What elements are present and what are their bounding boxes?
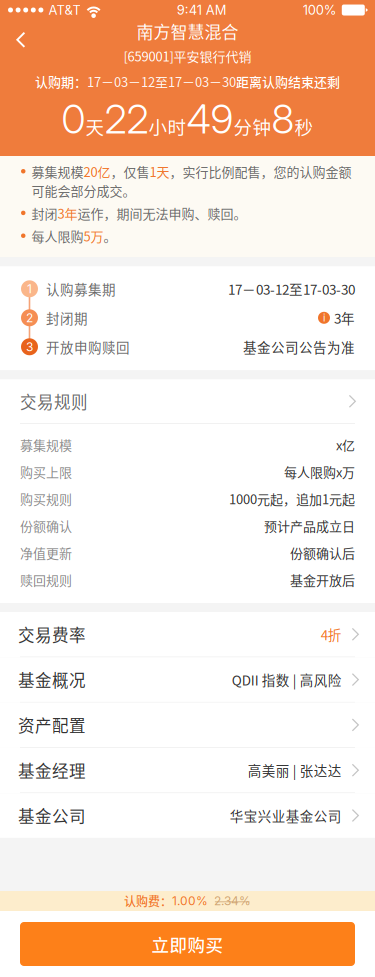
staticText: 开放申购赎回 bbox=[46, 337, 130, 356]
staticText: 净值更新 bbox=[20, 543, 72, 562]
staticText: 购买规则 bbox=[20, 489, 72, 508]
staticText: 基金概况 bbox=[18, 668, 86, 692]
staticText: 天 bbox=[85, 113, 104, 140]
staticText: 份额确认后 bbox=[290, 543, 355, 562]
staticText: 小时 bbox=[148, 113, 186, 140]
staticText: 秒 bbox=[294, 113, 313, 140]
staticText: 49 bbox=[186, 95, 233, 143]
staticText: 2.34% bbox=[214, 894, 251, 908]
staticText: 份额确认 bbox=[20, 516, 72, 535]
staticText: 每人限购5万。 bbox=[31, 226, 116, 245]
staticText: 22 bbox=[104, 95, 148, 143]
staticText: 南方智慧混合 bbox=[136, 19, 238, 43]
staticText: 高美丽 | 张达达 bbox=[248, 760, 342, 780]
staticText: 封闭3年运作，期间无法申购、赎回。 bbox=[31, 204, 246, 222]
staticText: 赎回规则 bbox=[20, 570, 72, 589]
staticText: 1000元起，追加1元起 bbox=[229, 489, 355, 508]
staticText: 每人限购x万 bbox=[284, 462, 355, 481]
staticText: 预计产品成立日 bbox=[264, 516, 355, 535]
staticText: AT&T bbox=[48, 2, 80, 18]
staticText: 封闭期 bbox=[46, 308, 88, 327]
staticText: 9:41 AM bbox=[177, 2, 227, 18]
staticText: 3 bbox=[26, 339, 33, 354]
staticText: i bbox=[323, 312, 325, 324]
staticText: 17－03－12至17－03－30 bbox=[87, 72, 236, 91]
staticText: 100% bbox=[303, 2, 337, 18]
button[interactable]: 交易规则 bbox=[0, 379, 375, 423]
staticText: 1.00% bbox=[172, 894, 208, 908]
staticText: 基金公司 bbox=[18, 804, 86, 827]
button[interactable]: 基金经理 bbox=[0, 748, 375, 793]
staticText: 3年 bbox=[334, 308, 355, 327]
staticText: 认购期： bbox=[35, 72, 87, 91]
staticText: 交易费率 bbox=[18, 622, 86, 646]
staticText: 购买上限 bbox=[20, 462, 72, 481]
staticText: 基金开放后 bbox=[290, 570, 355, 589]
staticText: 8 bbox=[271, 95, 294, 143]
staticText: 1 bbox=[27, 281, 32, 296]
staticText: 募集规模 bbox=[20, 435, 72, 454]
staticText: 2 bbox=[26, 310, 33, 325]
staticText: 资产配置 bbox=[18, 713, 86, 737]
staticText: 立即购买 bbox=[151, 931, 223, 957]
staticText: QDII 指数 | 高风险 bbox=[232, 670, 342, 689]
staticText: 华宝兴业基金公司 bbox=[230, 806, 342, 825]
button[interactable]: 返回 bbox=[0, 19, 46, 60]
staticText: 17－03-12至17-03-30 bbox=[228, 279, 355, 298]
staticText: 交易规则 bbox=[20, 389, 88, 413]
staticText: [659001]平安银行代销 bbox=[123, 46, 251, 65]
staticText: 0 bbox=[61, 95, 85, 143]
staticText: x亿 bbox=[336, 435, 355, 454]
staticText: 基金经理 bbox=[18, 758, 86, 782]
button[interactable]: 基金概况 bbox=[0, 657, 375, 703]
staticText: 基金公司公告为准 bbox=[243, 337, 355, 356]
staticText: 距离认购结束还剩 bbox=[236, 72, 340, 91]
button[interactable]: 资产配置 bbox=[0, 703, 375, 748]
button[interactable]: 交易费率 bbox=[0, 612, 375, 657]
staticText: 分钟 bbox=[233, 113, 271, 140]
staticText: 认购募集期 bbox=[46, 279, 116, 298]
button[interactable]: 立即购买 bbox=[20, 922, 355, 966]
staticText: 认购费： bbox=[124, 892, 172, 910]
staticText: 4折 bbox=[321, 624, 342, 644]
button[interactable]: 基金公司 bbox=[0, 793, 375, 838]
staticText: 募集规模20亿，仅售1天，实行比例配售，您的认购金额可能会部分成交。 bbox=[31, 162, 351, 200]
